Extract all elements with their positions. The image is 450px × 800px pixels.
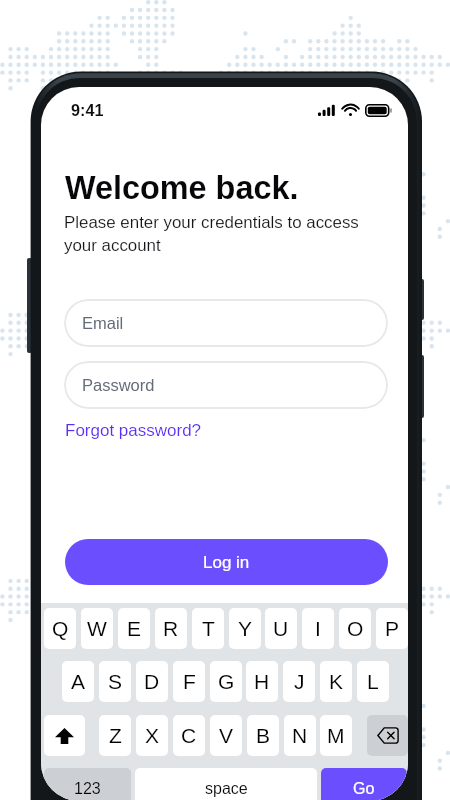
staticText: M [327,724,345,747]
button[interactable]: K [320,661,352,702]
staticText: Log in [203,553,250,572]
staticText: Password [82,376,155,394]
staticText: J [294,670,305,693]
staticText: space [205,780,248,798]
staticText: Welcome back. [65,170,299,206]
staticText: N [292,724,308,747]
staticText: Email [82,314,124,332]
button[interactable]: Backspace [367,715,408,756]
button[interactable]: Z [99,715,131,756]
staticText: Go [353,780,375,798]
staticText: O [347,617,364,640]
staticText: F [183,670,196,693]
button[interactable]: Password [64,361,388,409]
staticText: 123 [74,780,101,798]
button[interactable]: M [320,715,352,756]
button[interactable]: R [155,608,187,649]
staticText: Q [52,617,69,640]
staticText: Z [109,724,122,747]
button[interactable]: D [136,661,168,702]
staticText: E [127,617,142,640]
staticText: Forgot password? [65,421,202,440]
button[interactable]: X [136,715,168,756]
staticText: Please enter your credentials to access … [64,213,369,254]
button[interactable]: Forgot password? [65,421,202,440]
button[interactable]: U [265,608,297,649]
button[interactable]: G [210,661,242,702]
button[interactable]: O [339,608,371,649]
staticText: X [145,724,160,747]
staticText: I [315,617,321,640]
button[interactable]: Go [321,768,407,800]
button[interactable]: Shift [44,715,85,756]
button[interactable]: V [210,715,242,756]
staticText: B [256,724,271,747]
staticText: G [218,670,235,693]
button[interactable]: B [247,715,279,756]
button[interactable]: S [99,661,131,702]
button[interactable]: space [135,768,317,800]
staticText: 9:41 [71,101,104,119]
staticText: W [87,617,107,640]
button[interactable]: P [376,608,408,649]
staticText: P [385,617,400,640]
staticText: T [202,617,215,640]
button[interactable]: I [302,608,334,649]
button[interactable]: C [173,715,205,756]
button[interactable]: Y [229,608,261,649]
staticText: U [273,617,289,640]
button[interactable]: A [62,661,94,702]
button[interactable]: Log in [65,539,388,585]
staticText: Y [238,617,253,640]
staticText: R [163,617,179,640]
button[interactable]: 123 [44,768,131,800]
button[interactable]: E [118,608,150,649]
button[interactable]: H [246,661,278,702]
staticText: C [181,724,197,747]
button[interactable]: W [81,608,113,649]
button[interactable]: L [357,661,389,702]
staticText: L [367,670,379,693]
button[interactable]: T [192,608,224,649]
staticText: K [329,670,344,693]
staticText: V [219,724,234,747]
button[interactable]: Email [64,299,388,347]
staticText: S [108,670,123,693]
staticText: H [254,670,270,693]
staticText: D [144,670,160,693]
button[interactable]: J [283,661,315,702]
button[interactable]: Q [44,608,76,649]
button[interactable]: N [284,715,316,756]
staticText: A [71,670,86,693]
button[interactable]: F [173,661,205,702]
